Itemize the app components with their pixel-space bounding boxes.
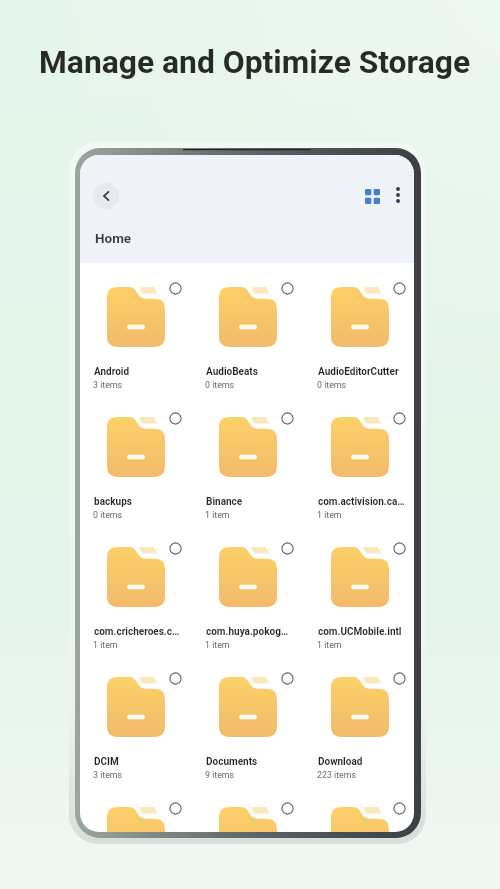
button[interactable]: Pictures <box>318 807 414 832</box>
button[interactable]: Grid view <box>361 185 384 208</box>
staticText: 3 items <box>93 380 123 390</box>
button[interactable]: More options <box>388 185 408 205</box>
staticText: DCIM <box>94 756 182 768</box>
staticText: com.UCMobile.intl <box>318 626 406 638</box>
staticText: 0 items <box>205 380 235 390</box>
button[interactable]: AudioEditorCutter <box>318 287 414 399</box>
button[interactable]: com.huya.pokog… <box>206 547 314 659</box>
staticText: com.cricheroes.c… <box>94 626 182 638</box>
staticText: AudioEditorCutter <box>318 366 406 378</box>
staticText: 0 items <box>317 380 347 390</box>
staticText: com.huya.pokog… <box>206 626 294 638</box>
staticText: AudioBeats <box>206 366 294 378</box>
button[interactable]: Back <box>93 183 119 209</box>
staticText: 223 items <box>317 770 356 780</box>
staticText: 3 items <box>93 770 123 780</box>
button[interactable]: Binance <box>206 417 314 529</box>
button[interactable]: Movies <box>94 807 202 832</box>
staticText: 1 item <box>205 640 230 650</box>
staticText: backups <box>94 496 182 508</box>
button[interactable]: com.activision.ca… <box>318 417 414 529</box>
button[interactable]: Documents <box>206 677 314 789</box>
staticText: Binance <box>206 496 294 508</box>
staticText: Download <box>318 756 406 768</box>
staticText: Android <box>94 366 182 378</box>
button[interactable]: Android <box>94 287 202 399</box>
button[interactable]: com.cricheroes.c… <box>94 547 202 659</box>
button[interactable]: com.UCMobile.intl <box>318 547 414 659</box>
staticText: 1 item <box>317 510 342 520</box>
staticText: com.activision.ca… <box>318 496 406 508</box>
button[interactable]: DCIM <box>94 677 202 789</box>
staticText: Manage and Optimize Storage <box>39 43 471 80</box>
staticText: 1 item <box>205 510 230 520</box>
button[interactable]: AudioBeats <box>206 287 314 399</box>
staticText: 9 items <box>205 770 235 780</box>
staticText: 0 items <box>93 510 123 520</box>
staticText: 1 item <box>317 640 342 650</box>
staticText: Home <box>95 230 132 246</box>
button[interactable]: backups <box>94 417 202 529</box>
staticText: Documents <box>206 756 294 768</box>
staticText: 1 item <box>93 640 118 650</box>
button[interactable]: Download <box>318 677 414 789</box>
button[interactable]: Music <box>206 807 314 832</box>
